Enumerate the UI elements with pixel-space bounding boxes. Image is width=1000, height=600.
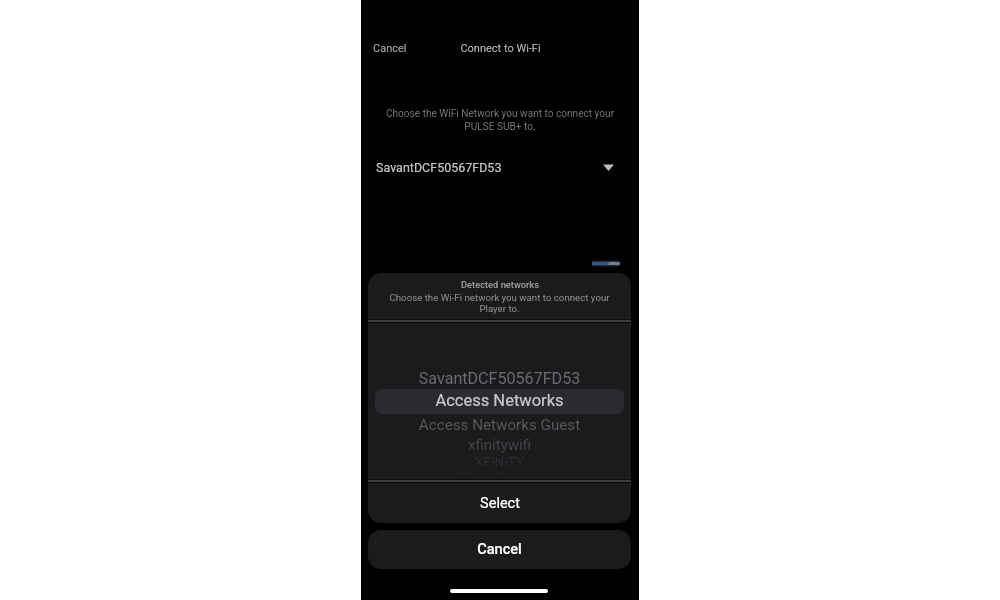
other: Show network list — [603, 164, 614, 171]
button[interactable]: Cancel — [368, 530, 631, 569]
staticText: SavantDCF50567FD53 — [376, 160, 502, 175]
staticText: Select — [480, 495, 520, 512]
staticText: SavantDCF50567FD53 — [368, 369, 631, 388]
staticText: Access Networks — [368, 391, 631, 410]
staticText: xfinitywifi — [368, 436, 631, 454]
staticText: Connect to Wi-Fi — [460, 42, 541, 55]
staticText: Access Networks Guest — [368, 416, 631, 434]
button[interactable]: SavantDCF50567FD53 — [368, 369, 631, 388]
button[interactable]: xfinitywifi — [368, 436, 631, 454]
button[interactable]: Select — [368, 483, 631, 523]
staticText: Choose the WiFi Network you want to conn… — [380, 108, 620, 132]
staticText: Detected networks — [461, 279, 539, 290]
staticText: Cancel — [373, 42, 407, 55]
button[interactable]: SavantDCF50567FD53 — [361, 154, 639, 180]
button[interactable]: Access Networks Guest — [368, 416, 631, 434]
button[interactable]: Access Networks — [368, 391, 631, 410]
staticText: Cancel — [477, 541, 522, 558]
button[interactable]: Cancel — [367, 36, 413, 61]
staticText: Choose the Wi-Fi network you want to con… — [376, 292, 623, 314]
